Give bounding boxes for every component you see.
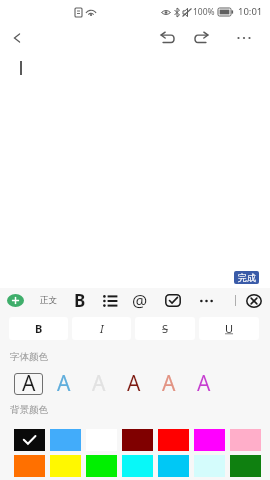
- button[interactable]: [14, 429, 45, 451]
- staticText: S: [162, 321, 169, 336]
- staticText: A: [92, 369, 106, 391]
- button[interactable]: I: [72, 317, 131, 340]
- button[interactable]: A: [84, 373, 113, 395]
- button[interactable]: Bulleted list: [98, 288, 122, 313]
- staticText: I: [100, 321, 104, 336]
- staticText: 正文: [40, 295, 57, 306]
- button[interactable]: A: [189, 373, 218, 395]
- button[interactable]: A: [49, 373, 78, 395]
- button[interactable]: Bold: [68, 288, 92, 313]
- button[interactable]: A: [119, 373, 148, 395]
- button[interactable]: Redo: [186, 22, 218, 54]
- button[interactable]: 正文: [36, 288, 60, 313]
- button[interactable]: More options: [228, 22, 260, 54]
- staticText: 字体颜色: [10, 351, 48, 363]
- staticText: 完成: [238, 272, 256, 283]
- staticText: 背景颜色: [10, 404, 48, 416]
- button[interactable]: More formatting: [194, 288, 218, 313]
- button[interactable]: Back: [4, 22, 36, 54]
- staticText: A: [197, 369, 211, 391]
- button[interactable]: A: [14, 373, 43, 395]
- staticText: 10:01: [238, 5, 263, 18]
- staticText: A: [162, 369, 176, 391]
- staticText: @: [132, 289, 148, 312]
- button[interactable]: Mention: [128, 288, 152, 313]
- button[interactable]: Checklist: [160, 288, 185, 313]
- staticText: U: [225, 321, 234, 336]
- button[interactable]: A: [154, 373, 183, 395]
- button[interactable]: Undo: [150, 22, 182, 54]
- button[interactable]: B: [9, 317, 68, 340]
- staticText: B: [35, 321, 43, 336]
- button[interactable]: S: [135, 317, 195, 340]
- button[interactable]: 完成: [234, 271, 259, 284]
- staticText: A: [127, 369, 141, 391]
- staticText: 100%: [193, 6, 215, 18]
- staticText: A: [57, 369, 71, 391]
- button[interactable]: Insert: [3, 288, 28, 313]
- staticText: A: [22, 369, 36, 391]
- button[interactable]: U: [199, 317, 259, 340]
- button[interactable]: Close toolbar: [241, 288, 266, 313]
- staticText: B: [74, 289, 86, 312]
